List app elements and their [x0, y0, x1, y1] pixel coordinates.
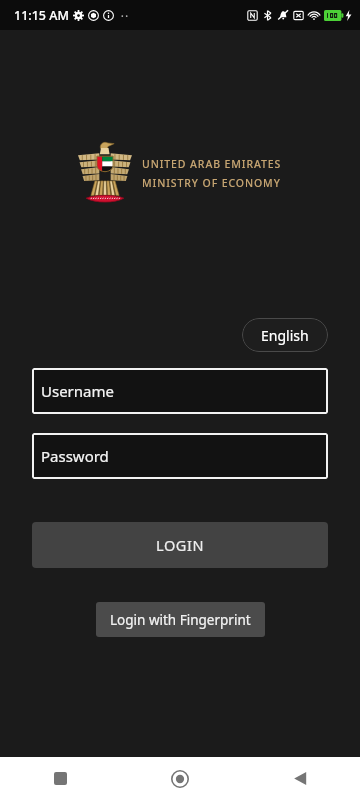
- staticText: English: [261, 326, 309, 345]
- button[interactable]: Username: [32, 368, 328, 414]
- staticText: Username: [41, 381, 114, 401]
- staticText: Login with Fingerprint: [110, 611, 251, 629]
- button[interactable]: Login with Fingerprint: [96, 602, 265, 637]
- button[interactable]: English: [242, 318, 328, 352]
- button[interactable]: Back: [240, 757, 360, 800]
- staticText: MINISTRY OF ECONOMY: [142, 176, 281, 190]
- staticText: UNITED ARAB EMIRATES: [142, 157, 282, 171]
- staticText: Password: [41, 446, 109, 466]
- button[interactable]: Password: [32, 433, 328, 479]
- button[interactable]: LOGIN: [32, 522, 328, 568]
- button[interactable]: Home: [120, 757, 240, 800]
- button[interactable]: Recents: [0, 757, 120, 800]
- staticText: LOGIN: [156, 535, 205, 555]
- staticText: 11:15 AM: [14, 7, 69, 24]
